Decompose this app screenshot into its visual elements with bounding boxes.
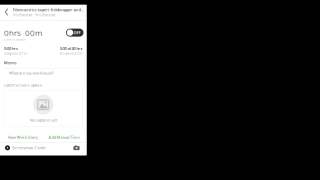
staticText: Memo: [4, 60, 16, 65]
staticText: 0:00 hrs: [4, 46, 18, 51]
staticText: 0hrs 00m: [4, 27, 42, 38]
button[interactable]: What are you working on?: [4, 68, 82, 77]
staticText: Current Session: [4, 38, 26, 41]
button[interactable]: Back: [1, 6, 13, 18]
button[interactable]: Add Manual Time: [43, 134, 84, 141]
button[interactable]: View Work Diary: [2, 134, 43, 141]
staticText: Today (Tue 4/15): [4, 52, 27, 55]
staticText: View Work Diary: [8, 135, 38, 140]
staticText: Latest Screen Capture: [4, 82, 42, 88]
staticText: Telemonitics expert fieldmapper and…: [13, 7, 83, 12]
staticText: This week (3/10): [59, 52, 82, 55]
staticText: Add Manual Time: [48, 135, 79, 140]
staticText: Screenshots Center: [12, 145, 46, 150]
button[interactable]: Tracking switch, off: [66, 29, 83, 37]
button[interactable]: Screenshots Center: [5, 145, 48, 150]
staticText: What are you working on?: [9, 70, 54, 76]
staticText: Felix Blanchard · Felix Blanchard: [13, 13, 56, 17]
button[interactable]: Take screen capture: [72, 143, 81, 152]
staticText: No captures yet: [30, 117, 57, 123]
staticText: OFF: [73, 30, 80, 35]
staticText: 0:00 of 40 hrs: [59, 46, 82, 51]
